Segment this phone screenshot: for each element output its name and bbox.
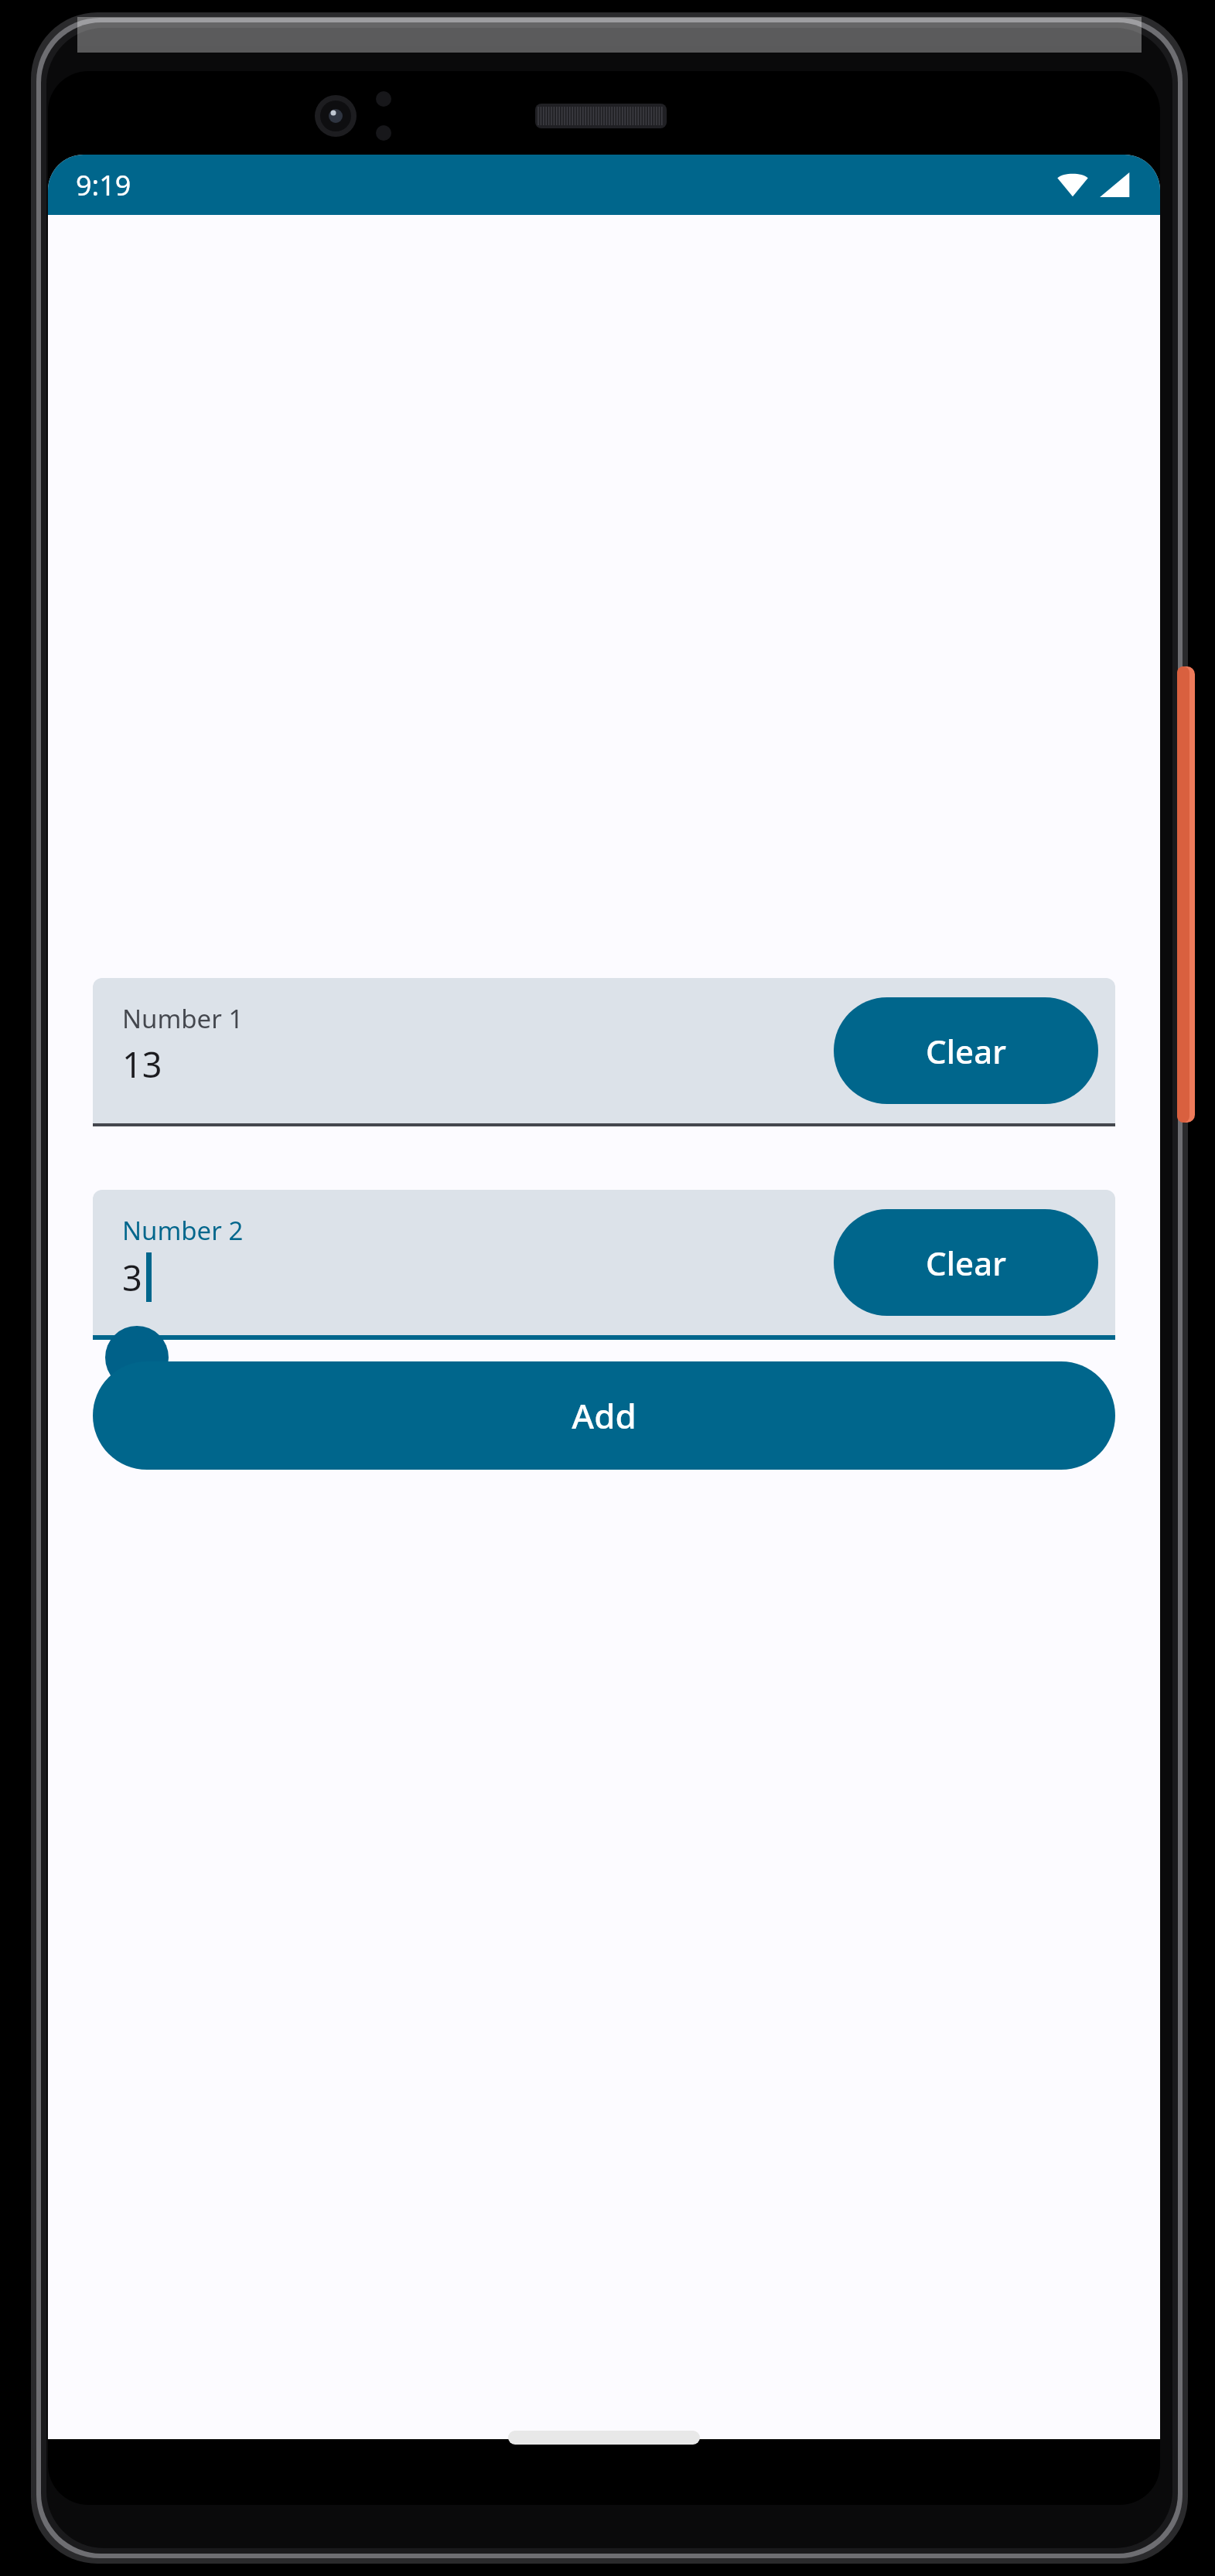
- staticText: Number 2: [122, 1213, 244, 1248]
- button[interactable]: Clear: [834, 997, 1098, 1104]
- other: Cursor handle: [105, 1326, 169, 1389]
- staticText: 13: [122, 1041, 162, 1088]
- staticText: 3: [122, 1254, 142, 1301]
- staticText: Add: [572, 1392, 637, 1439]
- staticText: Clear: [926, 1241, 1006, 1285]
- staticText: 9:19: [76, 166, 131, 204]
- button[interactable]: Clear: [834, 1209, 1098, 1316]
- staticText: Clear: [926, 1029, 1006, 1073]
- button[interactable]: Number 2: [93, 1190, 1115, 1335]
- button[interactable]: Number 1: [93, 978, 1115, 1123]
- staticText: Number 1: [122, 1001, 244, 1036]
- button[interactable]: Add: [93, 1361, 1115, 1470]
